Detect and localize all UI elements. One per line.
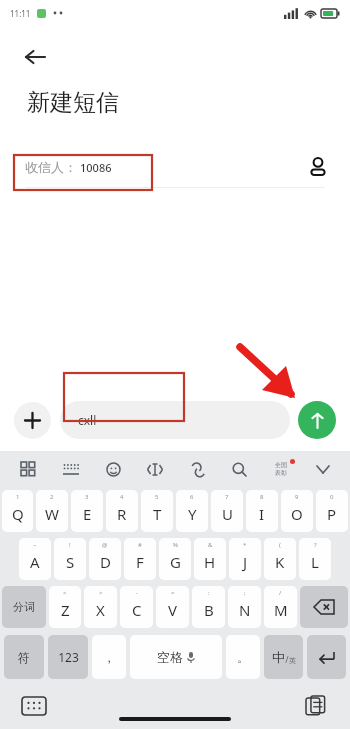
button[interactable]: % (159, 538, 191, 580)
staticText: 6 (190, 493, 194, 501)
staticText: L (311, 552, 319, 572)
staticText: Y (188, 504, 197, 524)
button[interactable]: & (194, 538, 226, 580)
button[interactable]: cxll (60, 401, 290, 439)
button[interactable]: ~ (19, 538, 51, 580)
button[interactable]: 3 (71, 490, 103, 532)
button[interactable]: 1 (2, 490, 33, 532)
staticText: 2 (50, 493, 54, 501)
button[interactable]: 6 (176, 490, 208, 532)
button[interactable]: 5 (141, 490, 173, 532)
staticText: S (66, 552, 75, 572)
button[interactable]: Pick contact (298, 147, 338, 187)
button[interactable]: * (229, 538, 261, 580)
staticText: 分词 (13, 600, 35, 614)
staticText: F (136, 552, 144, 572)
button[interactable]: - (120, 586, 153, 628)
button[interactable]: Toolbar 5 (218, 451, 260, 487)
staticText: 全国 (275, 461, 287, 469)
staticText: > (99, 589, 103, 597)
staticText: 9 (295, 493, 299, 501)
button[interactable]: 。 (226, 635, 260, 679)
staticText: * (243, 541, 247, 549)
staticText: @ (102, 541, 108, 549)
button[interactable]: Toolbar 1 (49, 451, 92, 487)
staticText: Z (61, 600, 70, 620)
button[interactable]: Toolbar 3 (134, 451, 176, 487)
staticText: H (204, 552, 216, 572)
staticText: 0 (330, 493, 334, 501)
button[interactable]: Hide keyboard (22, 697, 46, 715)
button[interactable]: Back (18, 40, 52, 74)
staticText: / (279, 589, 282, 597)
staticText: = (171, 589, 175, 597)
staticText: D (100, 552, 111, 572)
staticText: / (285, 653, 289, 665)
button[interactable]: ! (54, 538, 86, 580)
button[interactable]: Enter (307, 635, 346, 679)
staticText: K (275, 552, 285, 572)
staticText: B (204, 600, 214, 620)
staticText: X (96, 600, 105, 620)
staticText: V (168, 600, 178, 620)
button[interactable]: # (124, 538, 156, 580)
staticText: < (63, 589, 67, 597)
staticText: % (173, 541, 178, 549)
button[interactable]: : (192, 586, 225, 628)
staticText: # (138, 541, 142, 549)
button[interactable]: ? (299, 538, 331, 580)
staticText: P (327, 504, 337, 524)
staticText: - (136, 589, 138, 597)
staticText: cxll (78, 412, 97, 428)
button[interactable]: Backspace (300, 586, 348, 628)
staticText: 8 (260, 493, 264, 501)
staticText: 空格 (157, 649, 183, 665)
button[interactable]: Add attachment (14, 402, 51, 439)
staticText: T (153, 504, 162, 524)
staticText: ? (314, 541, 317, 549)
button[interactable]: > (84, 586, 117, 628)
button[interactable]: 中 (264, 635, 303, 679)
staticText: 11:11 (10, 8, 31, 19)
button[interactable]: 符 (4, 635, 44, 679)
button[interactable]: Toolbar 7 (302, 451, 344, 487)
button[interactable]: Toolbar 2 (92, 451, 134, 487)
button[interactable]: ， (92, 635, 126, 679)
button[interactable]: Toolbar 4 (176, 451, 218, 487)
staticText: N (239, 600, 251, 620)
button[interactable]: / (264, 586, 297, 628)
button[interactable]: @ (89, 538, 121, 580)
button[interactable]: Toolbar 0 (6, 451, 49, 487)
button[interactable]: 7 (211, 490, 243, 532)
button[interactable]: < (49, 586, 81, 628)
button[interactable]: 123 (48, 635, 88, 679)
button[interactable]: 空格 (130, 635, 222, 679)
staticText: ~ (33, 541, 37, 549)
staticText: E (83, 504, 92, 524)
staticText: C (132, 600, 142, 620)
button[interactable]: Recents (306, 696, 325, 716)
staticText: ， (103, 650, 115, 665)
button[interactable]: 分词 (2, 586, 46, 628)
button[interactable]: ; (228, 586, 261, 628)
staticText: 表彰 (275, 469, 287, 477)
staticText: G (170, 552, 181, 572)
button[interactable]: ( (264, 538, 296, 580)
staticText: : (208, 589, 210, 597)
staticText: M (274, 600, 288, 620)
button[interactable]: 4 (106, 490, 138, 532)
button[interactable]: 8 (246, 490, 278, 532)
button[interactable]: Send (298, 401, 336, 439)
button[interactable]: Toolbar 6 (260, 451, 302, 487)
staticText: J (243, 552, 248, 572)
button[interactable]: = (156, 586, 189, 628)
staticText: ! (69, 541, 71, 549)
button[interactable]: 0 (316, 490, 348, 532)
staticText: 1 (16, 493, 20, 501)
staticText: 。 (237, 650, 249, 665)
button[interactable]: 9 (281, 490, 313, 532)
button[interactable]: 收信人： (0, 147, 350, 187)
button[interactable]: 2 (36, 490, 68, 532)
staticText: W (45, 504, 59, 524)
staticText: & (208, 541, 213, 549)
